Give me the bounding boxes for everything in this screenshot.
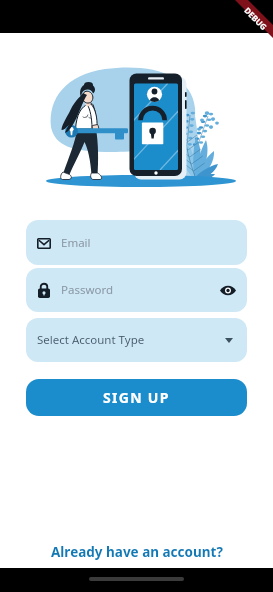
staticText: Email (61, 235, 91, 251)
button[interactable]: Select Account Type (26, 318, 247, 362)
button[interactable]: Show password (216, 278, 240, 302)
staticText: Already have an account? (51, 543, 223, 561)
staticText: DEBUG (242, 5, 270, 32)
button[interactable]: Password (26, 268, 247, 312)
button[interactable]: Already have an account? (0, 539, 273, 565)
button[interactable]: Email (26, 220, 247, 265)
staticText: SIGN UP (103, 388, 170, 407)
button[interactable]: SIGN UP (26, 379, 247, 416)
staticText: Select Account Type (37, 332, 145, 348)
staticText: Password (61, 282, 114, 298)
